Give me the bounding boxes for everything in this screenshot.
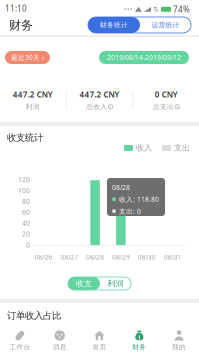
- staticText: 08/28: [86, 253, 104, 261]
- staticText: 2019/08/14-2019/09/12: [107, 53, 181, 62]
- staticText: 0 CNY: [155, 89, 178, 100]
- staticText: 订单收入占比: [7, 310, 61, 321]
- staticText: 120: [18, 175, 30, 184]
- staticText: 总支出: [153, 103, 174, 111]
- staticText: 运营统计: [151, 21, 179, 29]
- staticText: 收支统计: [7, 132, 43, 143]
- staticText: 利润: [107, 279, 123, 288]
- staticText: 首页: [92, 343, 106, 351]
- staticText: 08/31: [164, 253, 182, 261]
- staticText: 447.2 CNY: [79, 89, 119, 100]
- staticText: 80: [22, 197, 30, 206]
- staticText: 08/26: [34, 253, 52, 261]
- staticText: 支出: 0: [119, 207, 141, 216]
- staticText: 08/30: [138, 253, 156, 261]
- button[interactable]: 首页: [80, 326, 119, 355]
- button[interactable]: 最近30天 ›: [5, 51, 50, 64]
- staticText: ⇅: [153, 5, 159, 13]
- staticText: 40: [22, 219, 30, 228]
- button[interactable]: 运营统计: [140, 17, 191, 33]
- staticText: 收支: [76, 279, 92, 288]
- staticText: 最近30天 ›: [11, 53, 44, 62]
- staticText: 总收入: [86, 103, 107, 111]
- staticText: 利润: [26, 103, 40, 111]
- staticText: 100: [18, 186, 30, 195]
- staticText: 财务: [132, 343, 146, 351]
- staticText: 我的: [172, 343, 186, 351]
- staticText: 财务: [9, 18, 33, 33]
- staticText: 60: [22, 208, 30, 217]
- staticText: 20: [22, 229, 30, 238]
- staticText: 08/27: [60, 253, 78, 261]
- staticText: 08/28: [112, 183, 130, 192]
- staticText: •••: [124, 5, 133, 14]
- button[interactable]: 财务: [119, 326, 159, 355]
- button[interactable]: 2019/08/14-2019/09/12: [99, 51, 189, 64]
- staticText: 11:10: [5, 3, 27, 14]
- button[interactable]: 我的: [159, 326, 199, 355]
- staticText: 财务统计: [100, 21, 128, 29]
- staticText: 收入: 118.80: [119, 195, 159, 204]
- button[interactable]: 利润: [100, 277, 131, 290]
- button[interactable]: 财务统计: [88, 17, 140, 33]
- staticText: 消息: [53, 343, 67, 351]
- button[interactable]: 工作台: [0, 326, 40, 355]
- staticText: 0: [26, 240, 30, 249]
- staticText: 工作台: [9, 343, 30, 351]
- staticText: 收入: [136, 143, 152, 153]
- staticText: 08/29: [112, 253, 130, 261]
- staticText: 支出: [174, 143, 190, 153]
- staticText: 447.2 CNY: [13, 89, 53, 100]
- staticText: 74%: [173, 4, 190, 15]
- button[interactable]: 收支: [68, 277, 100, 290]
- button[interactable]: 消息: [40, 326, 80, 355]
